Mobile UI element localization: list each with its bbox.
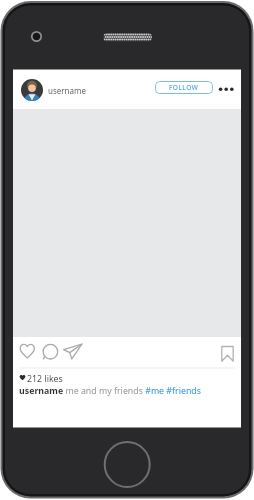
button[interactable] <box>19 343 36 360</box>
staticText: 212 likes <box>27 373 63 385</box>
button[interactable] <box>42 343 59 360</box>
button[interactable] <box>216 83 236 96</box>
staticText: username <box>48 85 87 96</box>
button[interactable]: username <box>18 78 88 102</box>
staticText: FOLLOW <box>169 83 199 92</box>
button[interactable] <box>104 442 150 488</box>
staticText: username me and my friends #me #friends <box>19 385 201 397</box>
button[interactable] <box>63 343 83 360</box>
button[interactable]: FOLLOW <box>155 81 213 94</box>
button[interactable] <box>220 345 235 363</box>
